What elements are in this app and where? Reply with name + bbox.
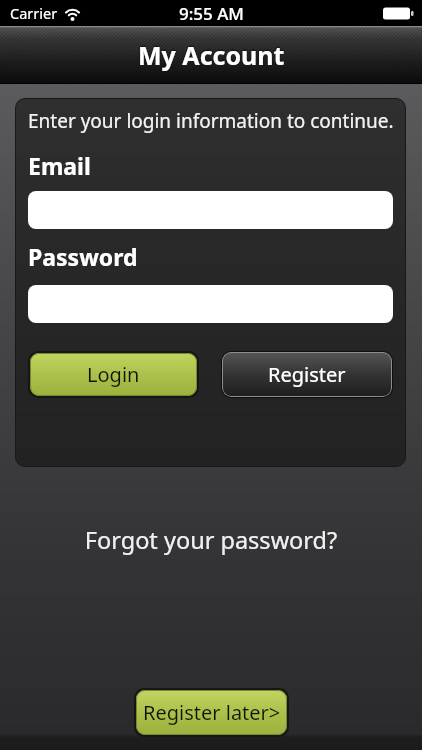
button[interactable]: Forgot your password? <box>0 524 422 556</box>
staticText: Register <box>268 361 346 388</box>
staticText: Enter your login information to continue… <box>28 108 393 134</box>
staticText: Password <box>28 241 138 272</box>
button[interactable]: Register later> <box>136 690 287 735</box>
staticText: Login <box>87 361 140 388</box>
button[interactable]: Login <box>30 353 197 396</box>
staticText: Register later> <box>143 699 281 726</box>
staticText: My Account <box>138 38 285 72</box>
button[interactable] <box>28 191 393 229</box>
button[interactable]: Register <box>222 352 392 397</box>
staticText: Email <box>28 150 91 181</box>
staticText: 9:55 AM <box>179 2 244 25</box>
staticText: Carrier <box>10 3 58 23</box>
button[interactable] <box>28 285 393 323</box>
